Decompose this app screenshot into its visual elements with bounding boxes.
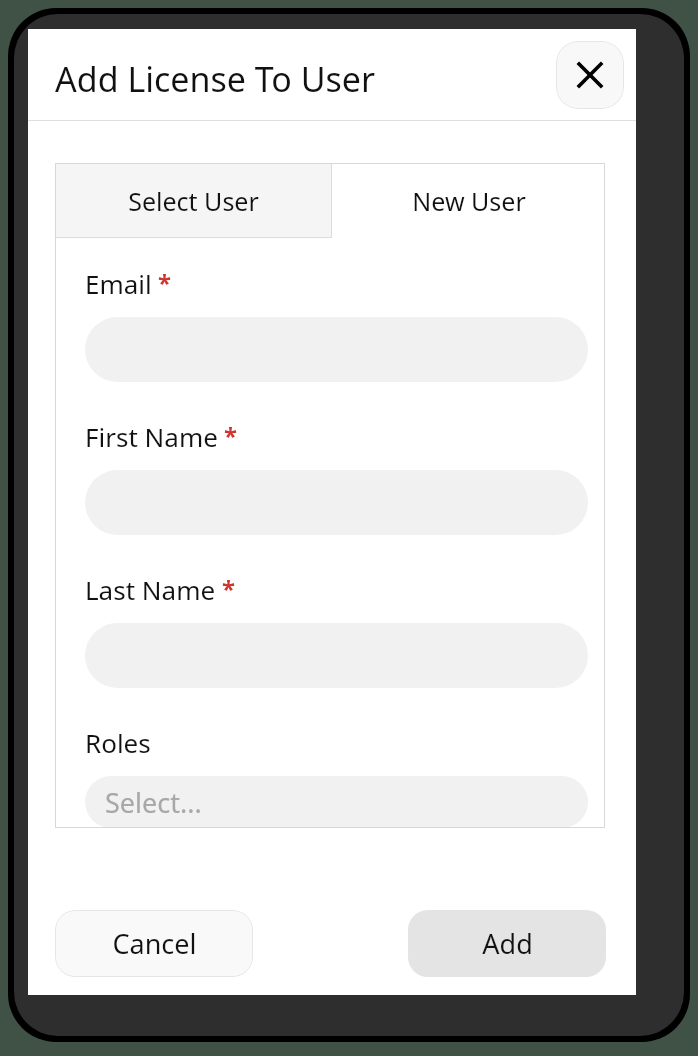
staticText: * <box>222 572 236 605</box>
button[interactable]: Add <box>408 910 606 977</box>
staticText: Add License To User <box>55 56 376 102</box>
staticText: Cancel <box>112 925 197 962</box>
staticText: * <box>224 419 238 452</box>
button[interactable]: New User <box>332 163 605 238</box>
staticText: Select... <box>105 784 202 821</box>
staticText: First Name <box>85 419 218 454</box>
staticText: Roles <box>85 725 151 760</box>
staticText: Email <box>85 266 152 301</box>
staticText: * <box>158 266 172 299</box>
button[interactable]: Select... <box>85 776 588 828</box>
staticText: Last Name <box>85 572 216 607</box>
staticText: New User <box>412 184 526 218</box>
staticText: Add <box>482 925 533 962</box>
staticText: Select User <box>128 184 259 218</box>
button[interactable]: Close <box>556 41 624 109</box>
button[interactable]: Cancel <box>55 910 253 977</box>
button[interactable]: Select User <box>55 163 332 238</box>
